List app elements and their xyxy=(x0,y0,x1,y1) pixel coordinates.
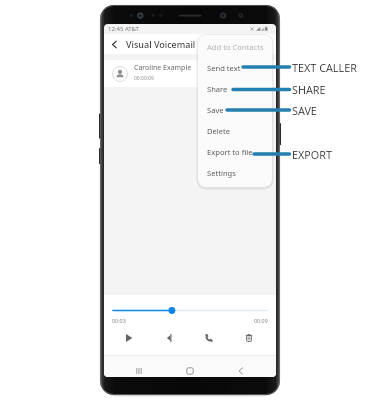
staticText: Add to Contacts xyxy=(207,42,264,52)
button[interactable]: Save xyxy=(198,99,272,120)
staticText: SAVE xyxy=(292,103,317,118)
button[interactable]: Share xyxy=(198,78,272,99)
button[interactable]: Call back xyxy=(189,327,229,349)
staticText: Export to file xyxy=(207,147,253,157)
button[interactable]: Delete xyxy=(198,120,272,141)
staticText: 00:03 xyxy=(112,317,126,324)
button[interactable]: Send text xyxy=(198,57,272,78)
staticText: 12:45 AT&T xyxy=(108,25,139,33)
staticText: Save xyxy=(207,105,224,115)
staticText: 00:09 xyxy=(254,317,268,324)
button[interactable]: Back xyxy=(215,364,266,377)
button[interactable]: Add to Contacts xyxy=(198,36,272,57)
button[interactable]: Export to file xyxy=(198,141,272,162)
staticText: 00:00:09 xyxy=(134,75,154,82)
button[interactable]: Caroline Example xyxy=(104,60,276,87)
button[interactable]: Delete xyxy=(229,327,269,349)
button[interactable]: Recent apps xyxy=(114,364,164,377)
staticText: SHARE xyxy=(292,82,326,97)
button[interactable]: Back xyxy=(104,34,124,54)
button[interactable]: Settings xyxy=(198,162,272,183)
staticText: Share xyxy=(207,84,228,94)
staticText: Delete xyxy=(207,126,231,136)
button[interactable]: Rewind xyxy=(149,327,189,349)
staticText: Visual Voicemail xyxy=(126,38,196,50)
staticText: Caroline Example xyxy=(134,63,192,73)
staticText: TEXT CALLER xyxy=(292,60,357,75)
staticText: Send text xyxy=(207,63,241,73)
button[interactable]: Home xyxy=(164,364,215,377)
staticText: Settings xyxy=(207,168,236,178)
staticText: EXPORT xyxy=(292,147,333,162)
button[interactable]: Play xyxy=(109,327,149,349)
